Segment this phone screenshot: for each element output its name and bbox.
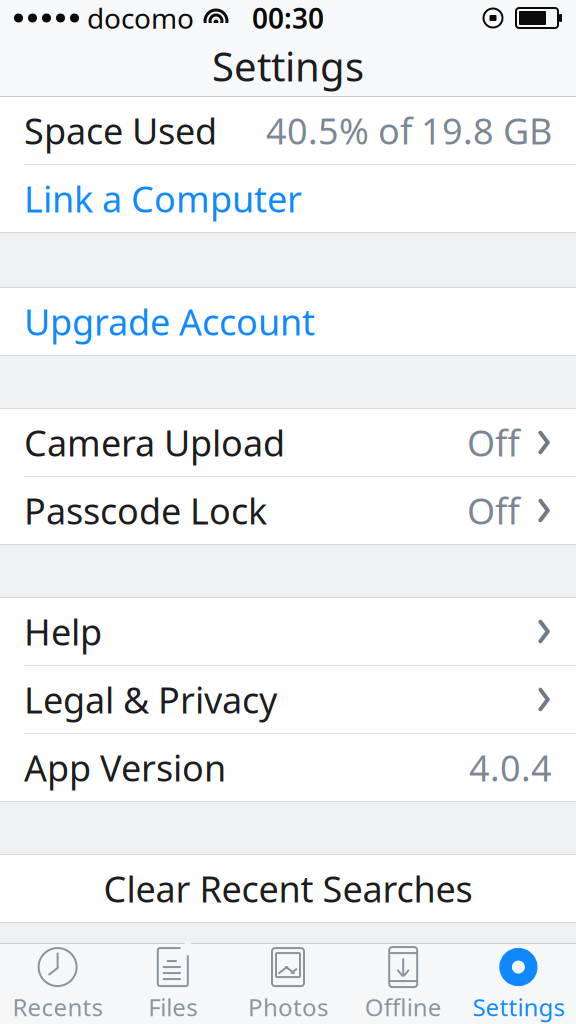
staticText: Camera Upload — [24, 419, 285, 466]
button[interactable]: Upgrade Account — [0, 288, 576, 355]
staticText: 00:30 — [252, 0, 324, 37]
button[interactable]: Camera Upload — [0, 409, 576, 476]
staticText: App Version — [24, 744, 226, 791]
staticText: Recents — [13, 991, 103, 1023]
button[interactable]: Link a Computer — [0, 165, 576, 232]
button[interactable]: Recents — [0, 945, 115, 1023]
button[interactable]: Settings — [461, 945, 576, 1023]
button[interactable]: Passcode Lock — [0, 477, 576, 544]
staticText: Settings — [212, 39, 364, 92]
button[interactable]: Space Used — [0, 97, 576, 164]
staticText: Files — [148, 991, 197, 1023]
staticText: Link a Computer — [24, 175, 302, 222]
staticText: Offline — [365, 991, 442, 1023]
button[interactable]: Help — [0, 598, 576, 665]
staticText: Legal & Privacy — [24, 676, 277, 723]
staticText: Off — [467, 487, 520, 534]
staticText: Space Used — [24, 107, 217, 154]
staticText: Help — [24, 608, 102, 655]
staticText: docomo — [87, 0, 194, 37]
staticText: 40.5% of 19.8 GB — [266, 107, 552, 154]
staticText: 4.0.4 — [469, 744, 552, 791]
button[interactable]: App Version — [0, 734, 576, 801]
staticText: Settings — [472, 991, 564, 1023]
button[interactable]: Clear Recent Searches — [0, 855, 576, 922]
button[interactable]: Legal & Privacy — [0, 666, 576, 733]
staticText: Photos — [248, 991, 328, 1023]
staticText: Clear Recent Searches — [103, 865, 472, 912]
button[interactable]: Offline — [346, 945, 461, 1023]
staticText: Off — [467, 419, 520, 466]
staticText: Passcode Lock — [24, 487, 267, 534]
button[interactable]: Files — [115, 945, 230, 1023]
staticText: Upgrade Account — [24, 298, 315, 345]
button[interactable]: Photos — [230, 945, 346, 1023]
